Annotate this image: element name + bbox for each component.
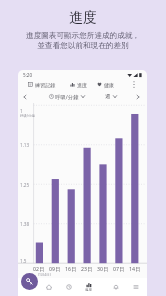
staticText: 23日: [81, 265, 93, 272]
staticText: 1.5: [20, 258, 27, 264]
button[interactable]: Start exercise: [21, 273, 38, 290]
button[interactable]: 進度: [70, 79, 88, 90]
staticText: 1.13: [20, 142, 30, 148]
button[interactable]: Practice: [40, 278, 58, 296]
staticText: 呼吸/分鐘: [55, 93, 79, 100]
button[interactable]: Progress: [80, 278, 98, 296]
staticText: 週: [105, 93, 111, 100]
staticText: 09日: [49, 265, 61, 272]
staticText: 30日: [97, 265, 109, 272]
button[interactable]: 週: [105, 90, 117, 103]
staticText: 1.38: [20, 221, 30, 227]
staticText: 進度: [77, 82, 88, 88]
staticText: 14日: [129, 265, 141, 272]
staticText: 進度圖表可顯示您所達成的成就， 並查看您以前和現在的差別: [26, 31, 140, 50]
button[interactable]: Previous: [19, 90, 31, 103]
staticText: 健康: [104, 82, 115, 88]
button[interactable]: 練習記錄: [28, 79, 56, 90]
button[interactable]: 健康: [97, 79, 115, 90]
staticText: 16日: [65, 265, 77, 272]
button[interactable]: 呼吸/分鐘: [49, 90, 85, 103]
staticText: 1: [20, 108, 23, 114]
button[interactable]: More options: [129, 79, 139, 90]
staticText: (1月4日): [38, 272, 51, 277]
staticText: 進度: [69, 9, 97, 27]
staticText: 呼吸/分鐘: [20, 113, 35, 118]
button[interactable]: Notifications: [107, 278, 125, 296]
staticText: 5:20: [23, 72, 33, 78]
staticText: 02日: [33, 265, 45, 272]
staticText: 1.25: [20, 182, 30, 188]
button[interactable]: Next: [132, 90, 144, 103]
staticText: 進度: [85, 288, 93, 293]
button[interactable]: More: [127, 278, 145, 296]
button[interactable]: Timer: [60, 278, 78, 296]
staticText: 練習記錄: [35, 82, 56, 88]
button[interactable]: Home: [20, 278, 38, 296]
staticText: 07日: [113, 265, 125, 272]
